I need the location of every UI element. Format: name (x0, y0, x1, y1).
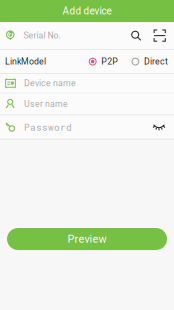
button[interactable]: Show password (153, 121, 165, 132)
staticText: User name (24, 99, 68, 109)
staticText: Serial No. (23, 30, 60, 41)
button[interactable]: Preview (0, 228, 174, 250)
staticText: Preview (67, 233, 106, 245)
staticText: Add device (62, 5, 111, 17)
staticText: Device name (24, 78, 76, 88)
staticText: P2P (101, 56, 118, 67)
button[interactable]: P2P (89, 56, 118, 67)
staticText: Direct (144, 56, 168, 67)
button[interactable]: Scan QR code (141, 29, 166, 42)
button[interactable]: Search (131, 30, 141, 41)
staticText: Password (24, 121, 72, 133)
button[interactable]: Direct (118, 56, 168, 67)
staticText: LinkModel (5, 56, 46, 67)
